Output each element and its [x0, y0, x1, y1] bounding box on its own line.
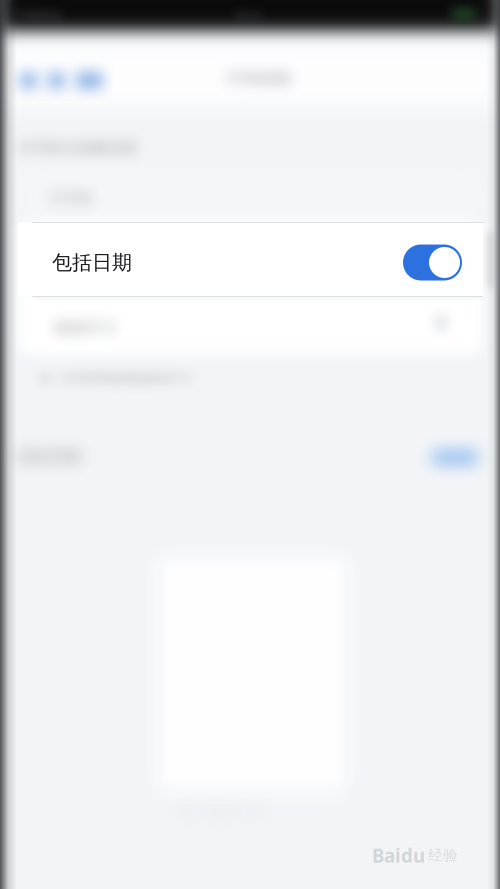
staticText: 经验 [428, 846, 458, 864]
button[interactable]: 分享 [76, 72, 103, 89]
staticText: 包括日期 [52, 250, 132, 275]
button[interactable]: 全选 [432, 450, 478, 465]
button[interactable]: 包括日期 [0, 222, 483, 297]
button[interactable]: 上一项 [19, 72, 38, 89]
button[interactable]: 下一项 [47, 72, 66, 89]
button[interactable]: 包括日期开关 [403, 244, 462, 280]
staticText: Baidu [372, 843, 425, 868]
